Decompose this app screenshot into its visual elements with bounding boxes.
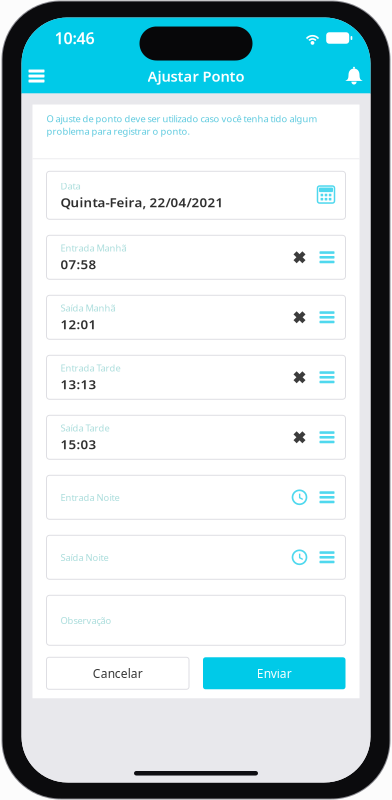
staticText: Entrada Noite [60,491,119,503]
button[interactable]: Opções [317,249,336,265]
button[interactable]: Opções [317,309,336,325]
staticText: Quinta-Feira, 22/04/2021 [60,193,223,211]
button[interactable]: Cancelar [46,657,189,689]
staticText: Observação [60,614,111,626]
button[interactable]: Menu [21,62,51,89]
staticText: Data [60,180,80,192]
button[interactable]: Limpar [290,248,308,266]
button[interactable]: Limpar [290,368,308,386]
button[interactable]: Escolher hora [290,488,308,506]
button[interactable]: Escolher hora [290,548,308,566]
staticText: 13:13 [60,375,96,393]
staticText: Ajustar Ponto [147,66,244,86]
staticText: 07:58 [60,255,96,273]
button[interactable]: Escolher data [315,185,336,206]
button[interactable]: Opções [317,549,336,565]
button[interactable]: Notificações [337,59,370,92]
button[interactable]: Opções [317,489,336,505]
staticText: 12:01 [60,315,96,333]
staticText: O ajuste de ponto deve ser utilizado cas… [46,112,317,137]
button[interactable]: Limpar [290,308,308,326]
staticText: Saída Manhã [60,302,115,314]
staticText: Entrada Manhã [60,242,126,254]
button[interactable]: Opções [317,369,336,385]
staticText: Enviar [257,665,292,681]
staticText: Saída Tarde [60,422,109,434]
staticText: 10:46 [54,27,94,49]
button[interactable]: Limpar [290,428,308,446]
button[interactable]: Enviar [203,657,345,689]
staticText: Entrada Tarde [60,362,120,374]
staticText: Cancelar [93,665,143,681]
button[interactable]: Opções [317,429,336,445]
staticText: 15:03 [60,435,96,453]
staticText: Saída Noite [60,551,108,563]
